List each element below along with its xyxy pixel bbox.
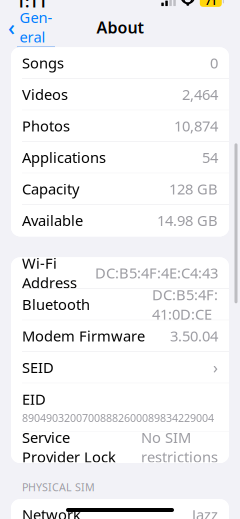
button[interactable]: SEID [11,352,229,383]
staticText: 54 [202,148,218,167]
staticText: Applications [22,148,106,167]
button[interactable]: Applications [11,142,229,173]
staticText: Service Provider Lock [22,427,116,466]
staticText: ‹ [8,13,15,41]
staticText: Photos [22,116,70,136]
button[interactable]: Capacity [11,173,229,205]
staticText: About [96,17,143,38]
staticText: 0 [210,53,218,73]
button[interactable]: Modem Firmware [11,320,229,352]
staticText: 89049032007008882600089834229004 [22,411,214,425]
staticText: DC:B5:4F:4E:C4:43 [95,263,218,283]
staticText: 3.50.04 [170,326,218,346]
staticText: 1:11 [16,0,47,12]
staticText: No SIM restrictions [141,427,218,466]
button[interactable]: Available [11,205,229,236]
button[interactable]: Videos [11,79,229,110]
staticText: Songs [22,53,64,73]
button[interactable]: Bluetooth [11,289,229,320]
staticText: Jazz [192,505,218,519]
staticText: SEID [22,358,54,377]
staticText: › [213,357,218,378]
button[interactable]: Songs [11,47,229,79]
staticText: Capacity [22,179,79,199]
button[interactable]: Service Provider Lock [11,431,229,463]
staticText: 2,464 [182,85,218,104]
staticText: 10,874 [174,116,218,136]
button[interactable]: EID [11,383,229,431]
staticText: EID [22,389,46,409]
staticText: Network [22,505,81,519]
staticText: 14.98 GB [157,211,218,230]
staticText: Videos [22,85,68,104]
button[interactable]: Network [11,499,229,519]
button[interactable]: Photos [11,110,229,142]
staticText: Modem Firmware [22,326,145,346]
staticText: PHYSICAL SIM [22,480,95,494]
staticText: 71 [205,0,217,8]
button[interactable]: ‹ [0,14,63,40]
staticText: General [19,8,52,47]
staticText: Available [22,211,83,230]
button[interactable]: Wi-Fi Address [11,257,229,289]
staticText: DC:B5:4F:41:0D:CE [152,285,218,324]
staticText: 128 GB [169,179,218,199]
staticText: Bluetooth [22,295,90,314]
staticText: Wi-Fi Address [22,253,77,292]
